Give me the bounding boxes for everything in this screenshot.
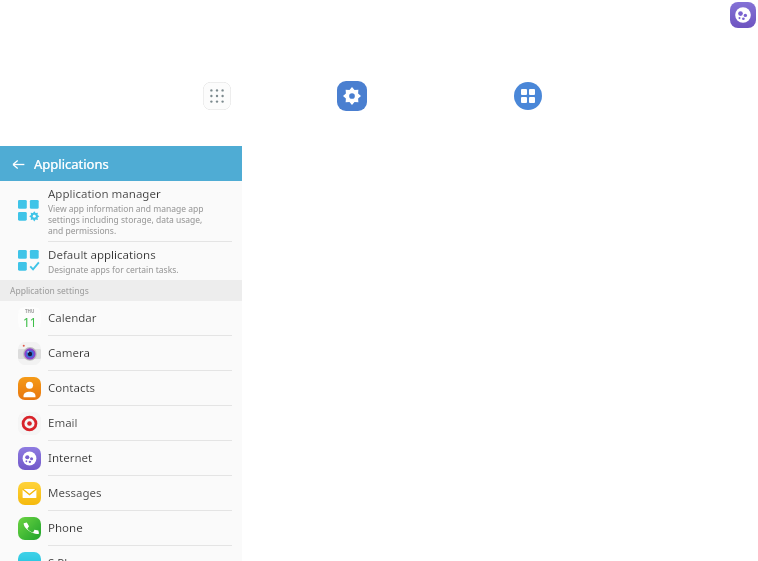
button[interactable]: Default applications	[0, 242, 242, 280]
staticText: Designate apps for certain tasks.	[48, 264, 179, 276]
button[interactable]: Internet	[0, 441, 242, 475]
button[interactable]: Back	[6, 152, 30, 176]
button[interactable]: Contacts	[0, 371, 242, 405]
staticText: Application settings	[10, 285, 89, 297]
staticText: Contacts	[48, 380, 96, 396]
button[interactable]: Phone	[0, 511, 242, 545]
button[interactable]: All apps	[514, 82, 542, 110]
staticText: Default applications	[48, 247, 156, 263]
staticText: Phone	[48, 520, 83, 536]
button[interactable]: Email	[0, 406, 242, 440]
button[interactable]: Application manager	[0, 181, 242, 241]
staticText: Calendar	[48, 310, 97, 326]
staticText: Email	[48, 415, 78, 431]
button[interactable]: Camera	[0, 336, 242, 370]
staticText: Applications	[34, 155, 109, 173]
staticText: Internet	[48, 450, 93, 466]
staticText: 11	[23, 314, 37, 330]
button[interactable]: S Planner	[0, 546, 242, 561]
staticText: THU	[25, 308, 35, 314]
button[interactable]: Settings	[337, 81, 367, 111]
staticText: Messages	[48, 485, 102, 501]
button[interactable]: Apps	[203, 82, 231, 110]
staticText: Application manager	[48, 186, 161, 202]
staticText: View app information and manage app sett…	[48, 203, 204, 236]
staticText: Camera	[48, 345, 90, 361]
button[interactable]: Messages	[0, 476, 242, 510]
staticText: S Planner	[48, 555, 100, 561]
button[interactable]: Internet	[730, 2, 756, 28]
button[interactable]: THU	[0, 301, 242, 335]
